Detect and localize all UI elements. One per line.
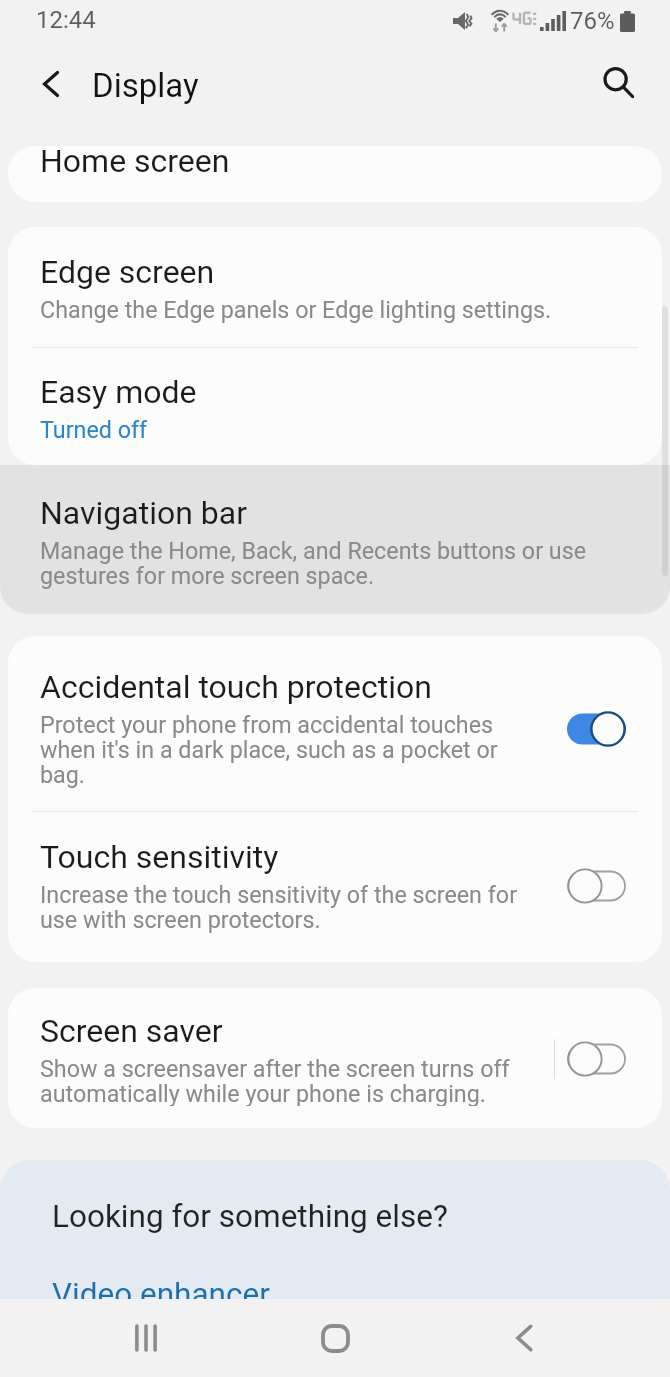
button[interactable]: Home [292, 1299, 378, 1377]
staticText: 12:44 [36, 6, 96, 34]
button[interactable]: Home screen [8, 146, 662, 202]
button[interactable]: Back [481, 1299, 567, 1377]
button[interactable]: Navigation bar [0, 465, 670, 610]
staticText: Increase the touch sensitivity of the sc… [40, 881, 520, 934]
staticText: Manage the Home, Back, and Recents butto… [40, 537, 600, 590]
button[interactable]: Screen saver [8, 988, 662, 1128]
staticText: Edge screen [40, 253, 215, 291]
staticText: Touch sensitivity [40, 838, 279, 876]
staticText: Navigation bar [40, 494, 247, 532]
button[interactable]: Recents [103, 1299, 189, 1377]
staticText: Turned off [40, 416, 148, 441]
staticText: Change the Edge panels or Edge lighting … [40, 296, 552, 323]
button[interactable]: Accidental touch protection [8, 636, 662, 811]
button[interactable]: Search [592, 56, 646, 110]
staticText: Looking for something else? [52, 1198, 448, 1235]
button[interactable]: Edge screen [8, 227, 662, 347]
staticText: Easy mode [40, 373, 197, 411]
staticText: Screen saver [40, 1012, 223, 1050]
button[interactable]: Touch sensitivity [8, 812, 662, 956]
button[interactable] [555, 1032, 637, 1086]
button[interactable]: Easy mode [8, 348, 662, 465]
button[interactable] [555, 859, 637, 913]
button[interactable]: Back [24, 57, 78, 111]
staticText: Show a screensaver after the screen turn… [40, 1055, 530, 1106]
staticText: Video enhancer [52, 1276, 270, 1299]
staticText: Home screen [40, 146, 230, 180]
staticText: Display [92, 66, 199, 105]
staticText: 76% [570, 7, 615, 35]
button[interactable] [555, 702, 637, 756]
staticText: Accidental touch protection [40, 668, 432, 706]
staticText: Protect your phone from accidental touch… [40, 711, 520, 789]
